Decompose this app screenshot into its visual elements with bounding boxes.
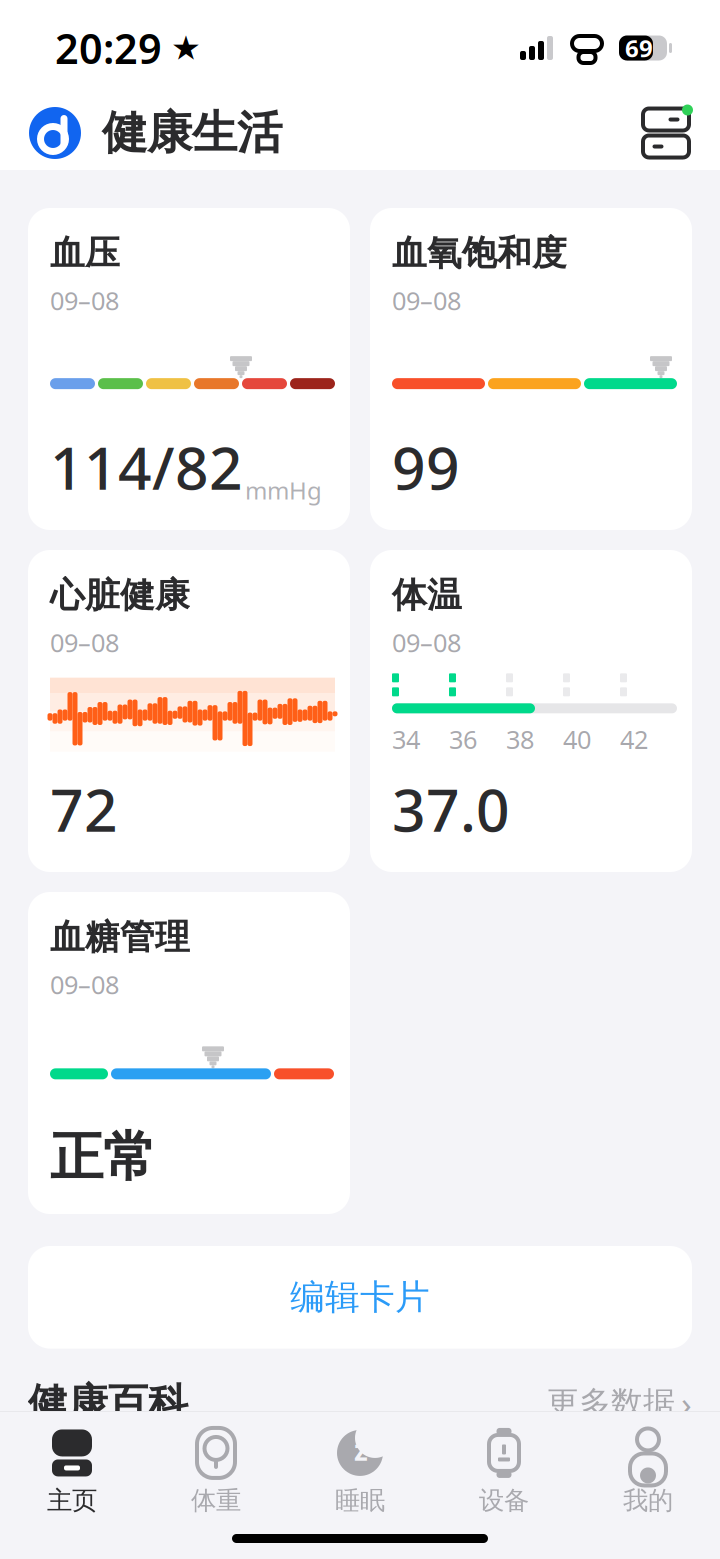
button[interactable]: 血氧饱和度 — [370, 208, 692, 530]
staticText: 42 — [620, 722, 648, 756]
staticText: 血糖管理 — [50, 916, 190, 959]
staticText: 心脏健康 — [50, 574, 190, 617]
staticText: 体重 — [191, 1485, 241, 1516]
staticText: 体温 — [392, 574, 462, 617]
button[interactable]: 血糖管理 — [28, 892, 350, 1214]
staticText: 34 — [392, 722, 420, 756]
button[interactable]: z — [288, 1416, 432, 1520]
staticText: 36 — [449, 722, 477, 756]
staticText: 38 — [506, 722, 534, 756]
staticText: 40 — [563, 722, 591, 756]
staticText: z — [354, 1431, 368, 1469]
staticText: 健康百科 — [28, 1379, 188, 1428]
staticText: 主页 — [47, 1485, 97, 1516]
staticText: 20:29 — [55, 21, 162, 75]
staticText: 69 — [625, 32, 653, 64]
staticText: › — [681, 1380, 692, 1426]
staticText: 血氧饱和度 — [392, 232, 567, 275]
staticText: 09–08 — [392, 284, 461, 317]
staticText: 我的 — [623, 1485, 673, 1516]
staticText: 114/82 — [50, 428, 243, 506]
staticText: 血压 — [50, 232, 120, 275]
button[interactable]: 心脏健康 — [28, 550, 350, 872]
button[interactable]: 我的设备 — [638, 105, 694, 161]
staticText: 设备 — [479, 1485, 529, 1516]
button[interactable]: 主页 — [0, 1416, 144, 1520]
staticText: 09–08 — [392, 626, 461, 659]
button[interactable]: 体重 — [144, 1416, 288, 1520]
button[interactable]: 血压 — [28, 208, 350, 530]
staticText: 09–08 — [50, 626, 119, 659]
staticText: 72 — [50, 770, 118, 848]
staticText: 编辑卡片 — [290, 1276, 430, 1319]
button[interactable]: 更多数据 — [547, 1380, 692, 1426]
staticText: mmHg — [245, 474, 322, 506]
button[interactable]: 编辑卡片 — [28, 1246, 692, 1349]
staticText: 09–08 — [50, 968, 119, 1001]
staticText: 99 — [392, 428, 460, 506]
staticText: 09–08 — [50, 284, 119, 317]
staticText: ★ — [171, 29, 201, 67]
staticText: 正常 — [50, 1124, 156, 1190]
staticText: 睡眠 — [335, 1485, 385, 1516]
button[interactable]: 我的 — [576, 1416, 720, 1520]
staticText: 37.0 — [392, 770, 510, 848]
button[interactable]: 体温 — [370, 550, 692, 872]
staticText: 健康生活 — [102, 105, 282, 161]
button[interactable]: 设备 — [432, 1416, 576, 1520]
staticText: 更多数据 — [547, 1383, 675, 1423]
